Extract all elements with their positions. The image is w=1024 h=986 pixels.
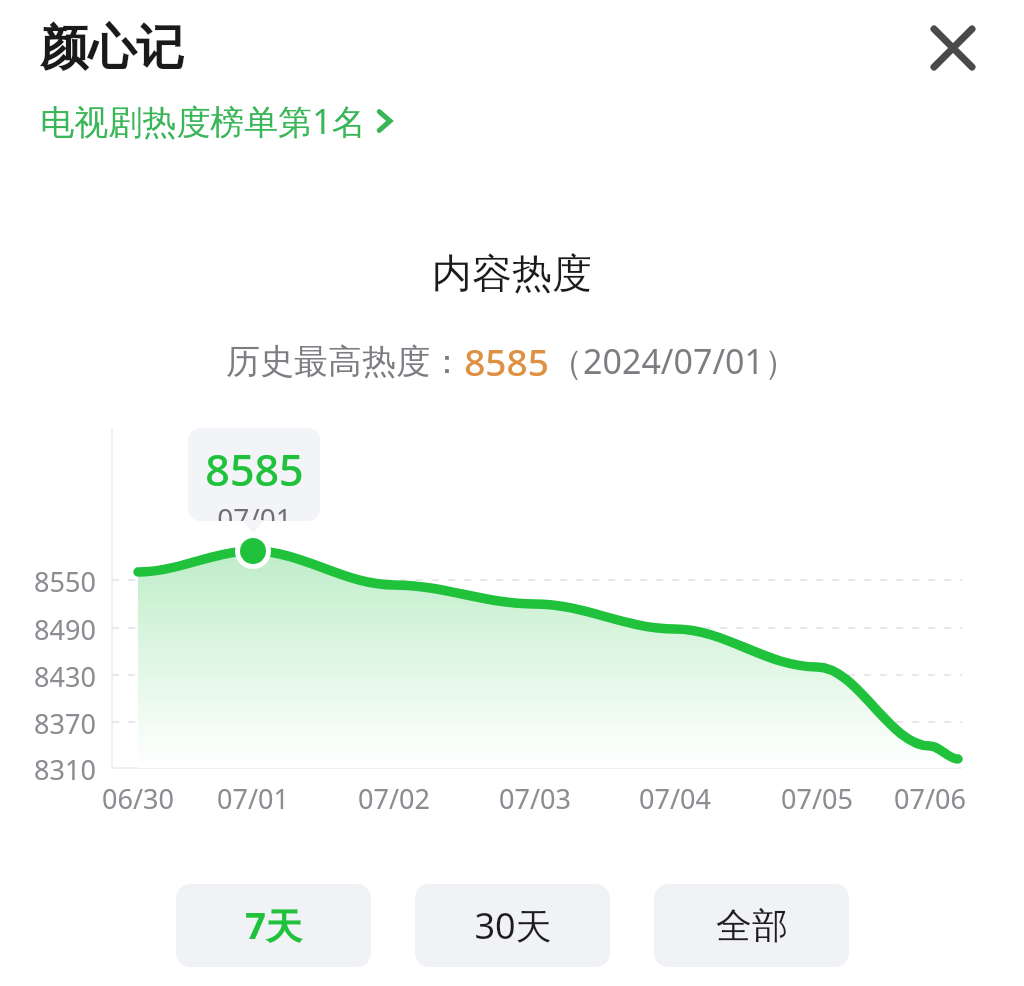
staticText: 07/03 (499, 780, 571, 817)
staticText: 8430 (34, 658, 96, 695)
staticText: 07/02 (358, 780, 430, 817)
staticText: 8370 (34, 705, 96, 742)
staticText: 历史最高热度： (226, 340, 464, 383)
staticText: 06/30 (102, 780, 174, 817)
staticText: 30天 (474, 901, 552, 950)
staticText: 8490 (34, 611, 96, 648)
staticText: 07/05 (781, 780, 853, 817)
staticText: 8585 (205, 440, 304, 499)
staticText: 07/06 (894, 780, 966, 817)
button[interactable]: 颜心记 (40, 18, 184, 78)
button[interactable]: Close (914, 9, 992, 87)
staticText: 8550 (34, 563, 96, 600)
staticText: 电视剧热度榜单第1名 (40, 98, 366, 144)
staticText: 颜心记 (40, 18, 184, 78)
staticText: 07/01 (217, 499, 292, 521)
staticText: 7天 (245, 901, 302, 950)
button[interactable]: 30天 (415, 884, 610, 967)
staticText: 全部 (716, 903, 788, 948)
staticText: 07/04 (639, 780, 711, 817)
button[interactable]: 电视剧热度榜单第1名 (40, 98, 402, 144)
staticText: 8585 (464, 336, 549, 386)
staticText: （2024/07/01） (549, 338, 798, 384)
button[interactable]: 7天 (176, 884, 371, 967)
button[interactable]: 全部 (654, 884, 849, 967)
staticText: 8310 (34, 751, 96, 788)
staticText: 07/01 (217, 780, 289, 817)
staticText: 内容热度 (432, 248, 592, 298)
